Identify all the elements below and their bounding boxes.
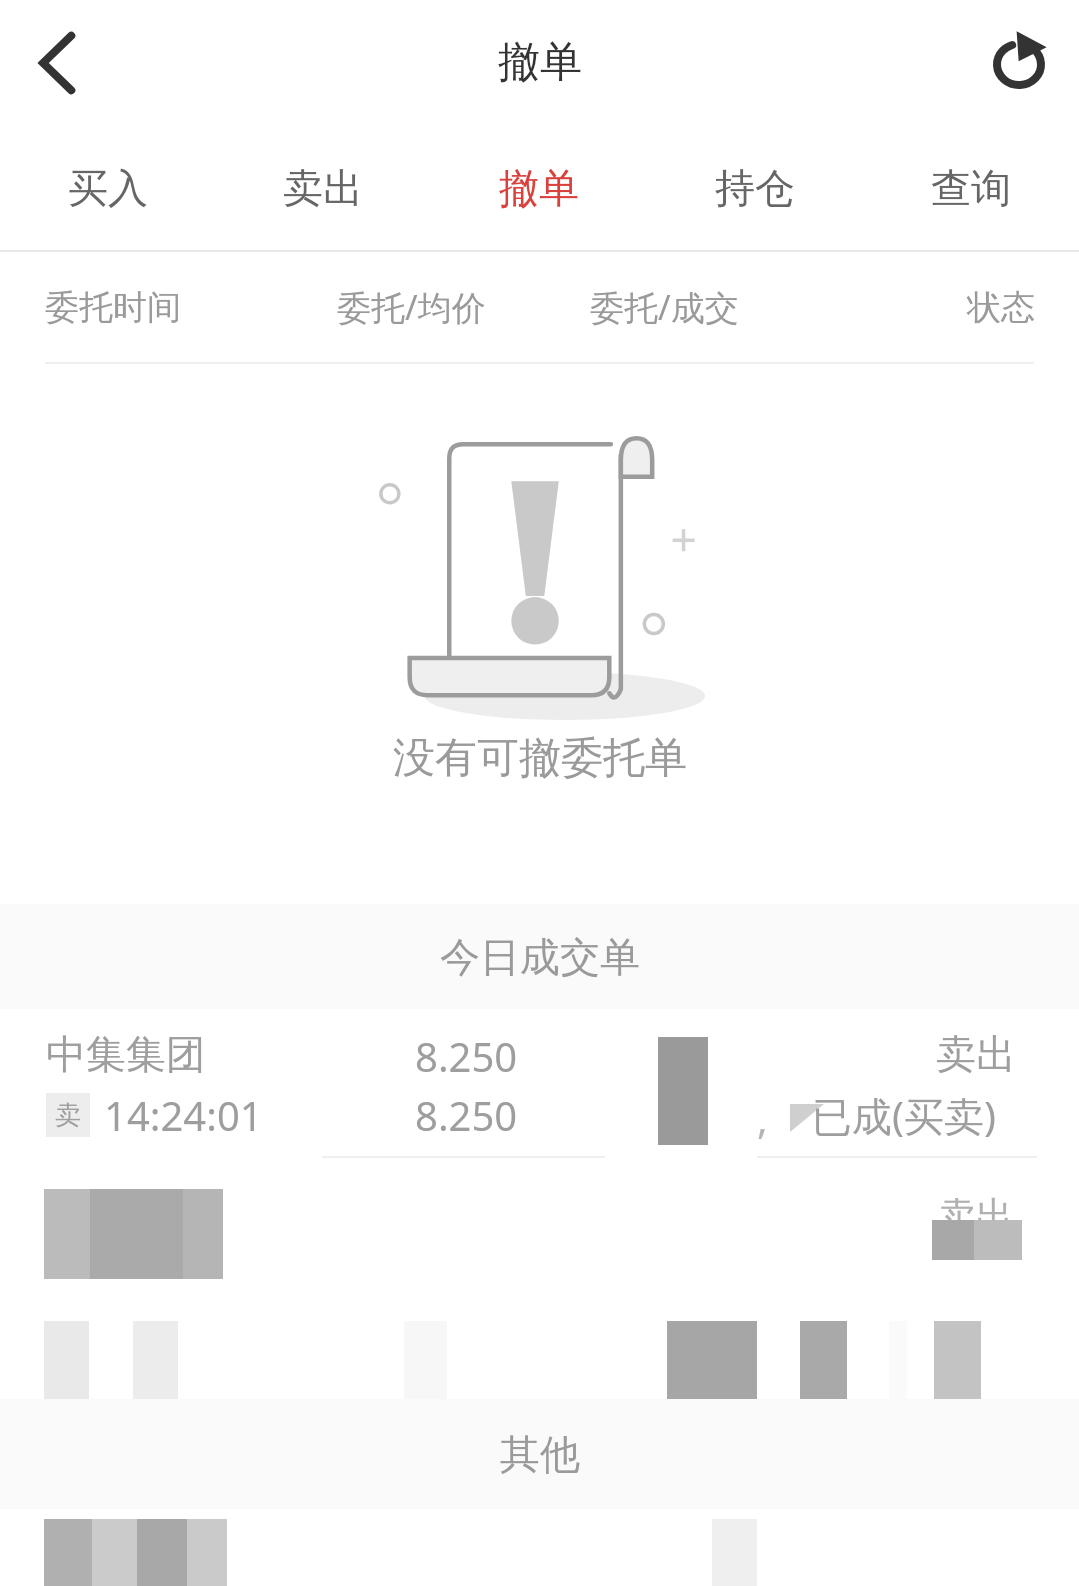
staticText: 已成(买卖) — [812, 1088, 996, 1143]
staticText: 卖出 — [283, 163, 363, 213]
staticText: 撤单 — [498, 36, 582, 89]
button[interactable]: Back — [0, 0, 118, 125]
staticText: 8.250 — [415, 1088, 518, 1142]
staticText: 没有可撤委托单 — [393, 732, 687, 785]
button[interactable]: 卖出 — [215, 125, 431, 250]
staticText: 卖出 — [938, 1192, 1014, 1240]
button[interactable]: 今日成交单 — [0, 904, 1079, 1009]
button[interactable]: 买入 — [0, 125, 215, 250]
button[interactable]: 中集集团 — [0, 1009, 1079, 1144]
staticText: 状态 — [967, 286, 1035, 329]
staticText: 8.250 — [415, 1029, 518, 1083]
staticText: 查询 — [931, 163, 1011, 213]
staticText: 委托/成交 — [590, 284, 739, 330]
button[interactable]: Refresh — [959, 0, 1079, 125]
staticText: 委托/均价 — [337, 284, 486, 330]
staticText: 卖 — [55, 1099, 81, 1132]
staticText: 中集集团 — [46, 1029, 206, 1079]
staticText: 卖出 — [936, 1029, 1016, 1079]
staticText: 买入 — [68, 163, 148, 213]
staticText: 14:24:01 — [104, 1088, 263, 1142]
staticText: 其他 — [500, 1429, 580, 1479]
staticText: 今日成交单 — [440, 932, 640, 982]
button[interactable]: 其他 — [0, 1399, 1079, 1509]
button[interactable]: 查询 — [863, 125, 1079, 250]
staticText: , — [757, 1091, 768, 1145]
staticText: 持仓 — [715, 163, 795, 213]
button[interactable]: 撤单 — [431, 125, 647, 250]
button[interactable]: 持仓 — [647, 125, 863, 250]
staticText: 委托时间 — [45, 286, 181, 329]
staticText: 撤单 — [499, 163, 579, 213]
